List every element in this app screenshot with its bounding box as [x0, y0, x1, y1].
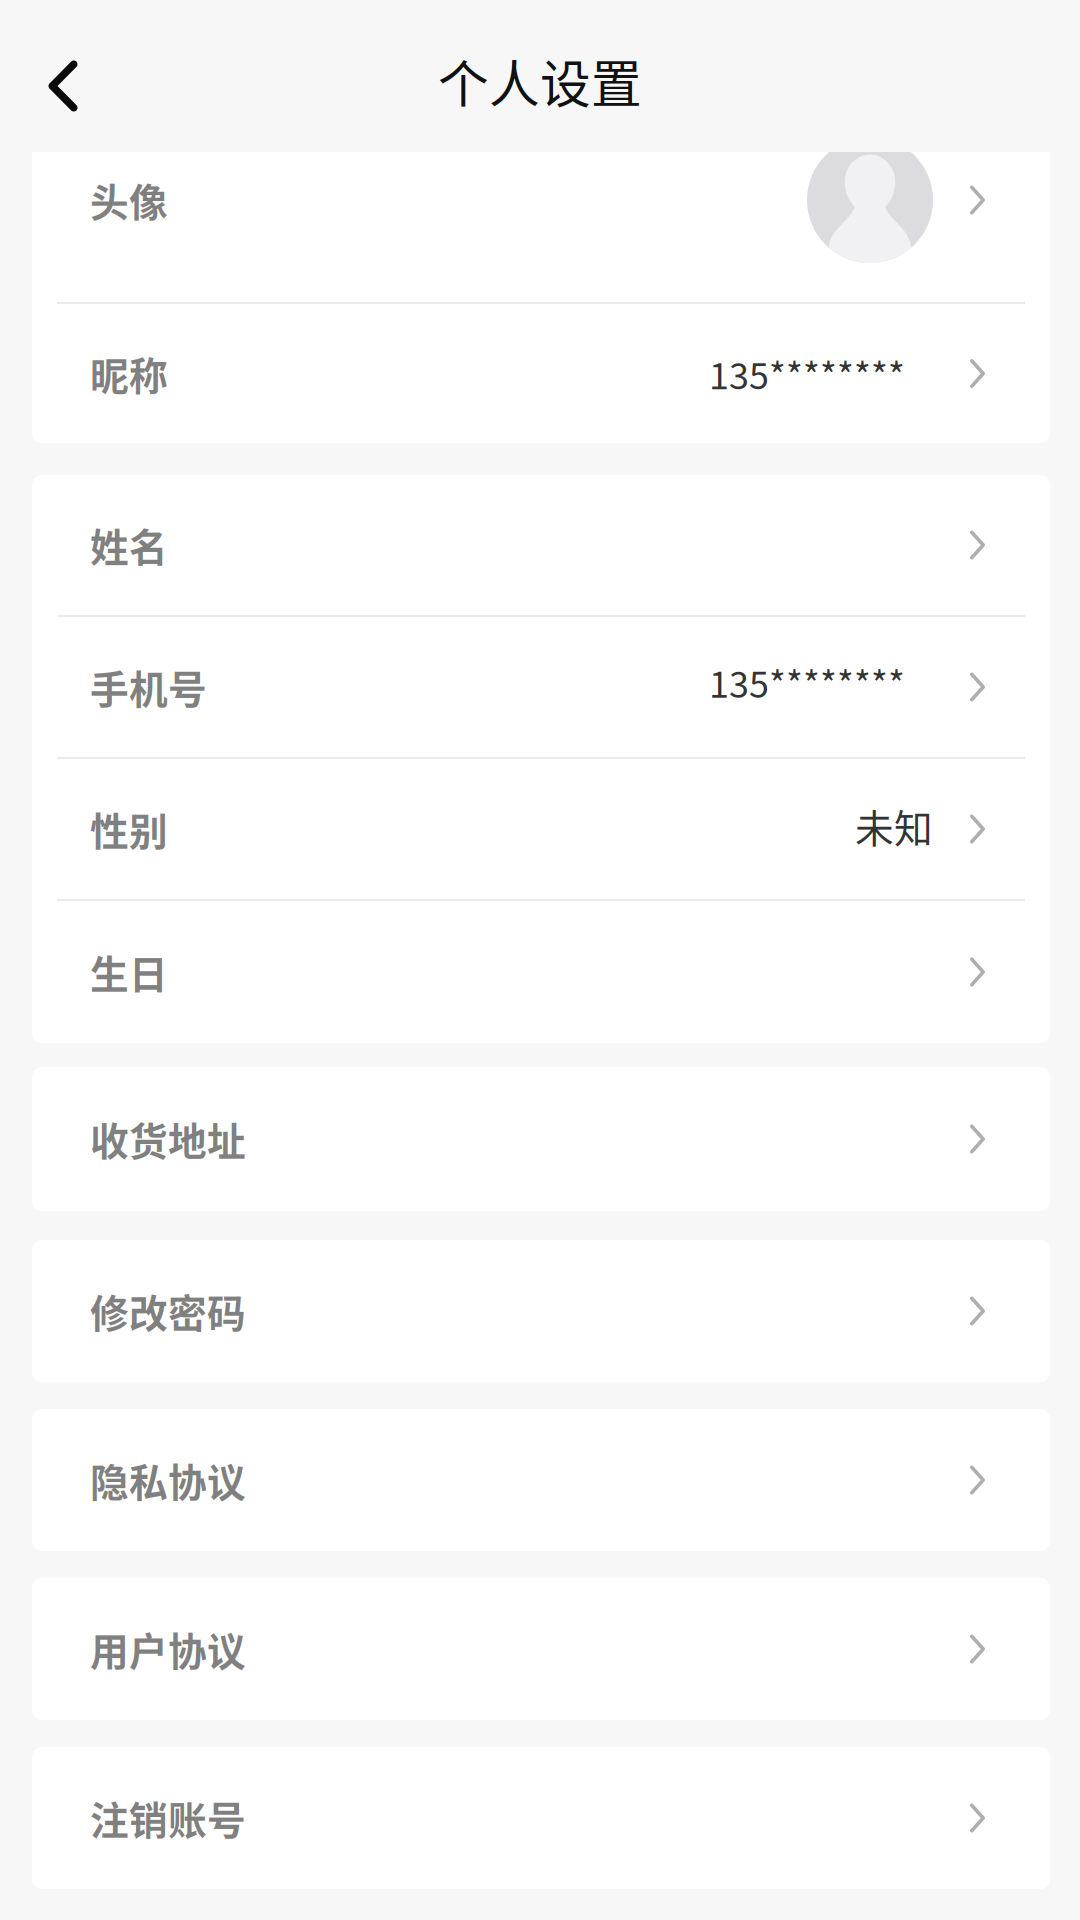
- button[interactable]: 性别: [32, 759, 1050, 899]
- button[interactable]: 姓名: [32, 475, 1050, 615]
- staticText: 隐私协议: [90, 1452, 246, 1508]
- staticText: 135********: [709, 347, 905, 399]
- staticText: 135********: [709, 656, 905, 708]
- staticText: 生日: [90, 944, 168, 1000]
- button[interactable]: 昵称: [32, 304, 1050, 443]
- staticText: 性别: [90, 801, 168, 857]
- staticText: 注销账号: [90, 1790, 246, 1846]
- button[interactable]: 头像: [32, 124, 1050, 302]
- staticText: 用户协议: [90, 1621, 246, 1677]
- staticText: 手机号: [90, 659, 207, 715]
- staticText: 收货地址: [90, 1111, 246, 1167]
- button[interactable]: Back: [21, 24, 105, 128]
- staticText: 头像: [90, 172, 168, 228]
- button[interactable]: 生日: [32, 901, 1050, 1043]
- staticText: 个人设置: [438, 44, 642, 118]
- staticText: 未知: [855, 798, 933, 854]
- staticText: 昵称: [90, 345, 168, 401]
- button[interactable]: 手机号: [32, 617, 1050, 757]
- button[interactable]: 注销账号: [32, 1747, 1050, 1889]
- staticText: 修改密码: [90, 1283, 246, 1339]
- button[interactable]: 修改密码: [32, 1240, 1050, 1382]
- button[interactable]: 用户协议: [32, 1578, 1050, 1720]
- button[interactable]: 收货地址: [32, 1067, 1050, 1211]
- button[interactable]: 隐私协议: [32, 1409, 1050, 1551]
- staticText: 姓名: [90, 517, 168, 573]
